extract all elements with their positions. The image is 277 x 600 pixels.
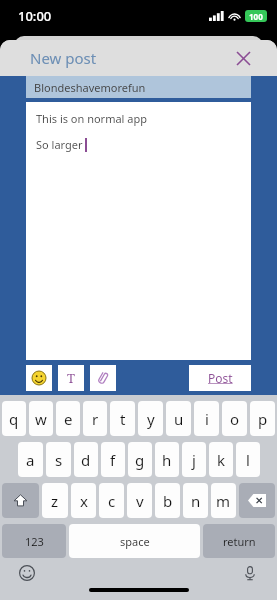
staticText: k [217, 450, 226, 470]
staticText: e [64, 409, 73, 429]
button[interactable]: Close [231, 46, 255, 70]
button[interactable]: i [194, 401, 219, 436]
staticText: j [192, 450, 196, 470]
staticText: d [81, 450, 91, 470]
staticText: Post [208, 370, 233, 386]
button[interactable]: p [250, 401, 275, 436]
staticText: l [246, 450, 250, 470]
staticText: w [35, 409, 47, 429]
staticText: a [26, 450, 35, 470]
staticText: This is on normal app [36, 111, 148, 126]
button[interactable]: l [236, 442, 260, 477]
button[interactable]: e [56, 401, 80, 436]
button[interactable]: o [222, 401, 247, 436]
staticText: s [55, 450, 63, 470]
button[interactable]: space [69, 524, 200, 558]
button[interactable]: This is on normal app [26, 102, 251, 360]
button[interactable]: g [128, 442, 152, 477]
staticText: q [9, 409, 19, 429]
button[interactable]: Emoji keyboard [16, 562, 38, 584]
button[interactable]: s [46, 442, 71, 477]
button[interactable]: h [155, 442, 179, 477]
staticText: h [162, 450, 172, 470]
staticText: p [258, 409, 268, 429]
staticText: z [51, 491, 59, 511]
staticText: n [191, 491, 201, 511]
button[interactable]: Backspace [239, 483, 275, 518]
staticText: t [120, 409, 126, 429]
staticText: u [174, 409, 184, 429]
staticText: T [67, 369, 75, 387]
button[interactable]: Text format [58, 365, 84, 391]
staticText: 100 [249, 11, 263, 22]
button[interactable]: f [101, 442, 125, 477]
button[interactable]: Post [189, 365, 251, 391]
button[interactable]: j [182, 442, 206, 477]
staticText: New post [30, 48, 97, 68]
button[interactable]: Dictation [239, 562, 261, 584]
button[interactable]: z [42, 483, 68, 518]
button[interactable]: Attach file [90, 365, 116, 391]
staticText: return [223, 534, 256, 549]
staticText: 123 [25, 534, 44, 549]
button[interactable]: w [29, 401, 53, 436]
staticText: i [205, 409, 209, 429]
button[interactable]: q [2, 401, 26, 436]
staticText: r [92, 409, 99, 429]
staticText: y [147, 409, 155, 429]
button[interactable]: a [18, 442, 43, 477]
button[interactable]: d [74, 442, 98, 477]
button[interactable]: u [166, 401, 191, 436]
staticText: v [136, 491, 144, 511]
button[interactable]: y [138, 401, 163, 436]
staticText: m [216, 491, 231, 511]
button[interactable]: v [127, 483, 152, 518]
button[interactable]: c [99, 483, 124, 518]
button[interactable]: r [83, 401, 107, 436]
button[interactable]: t [110, 401, 135, 436]
button[interactable]: 123 [2, 524, 66, 558]
button[interactable]: x [71, 483, 96, 518]
staticText: space [120, 534, 150, 549]
staticText: f [110, 450, 116, 470]
staticText: o [230, 409, 240, 429]
staticText: So larger [36, 137, 83, 152]
staticText: x [80, 491, 88, 511]
button[interactable]: m [211, 483, 236, 518]
button[interactable]: return [203, 524, 275, 558]
button[interactable]: n [183, 483, 208, 518]
button[interactable]: Blondeshavemorefun [26, 76, 251, 98]
staticText: 10:00 [18, 7, 52, 25]
staticText: c [108, 491, 116, 511]
button[interactable]: k [209, 442, 233, 477]
staticText: b [163, 491, 173, 511]
button[interactable]: b [155, 483, 180, 518]
button[interactable]: Emoji [26, 365, 52, 391]
button[interactable]: Shift [2, 483, 39, 518]
staticText: g [135, 450, 145, 470]
staticText: Blondeshavemorefun [34, 80, 146, 95]
